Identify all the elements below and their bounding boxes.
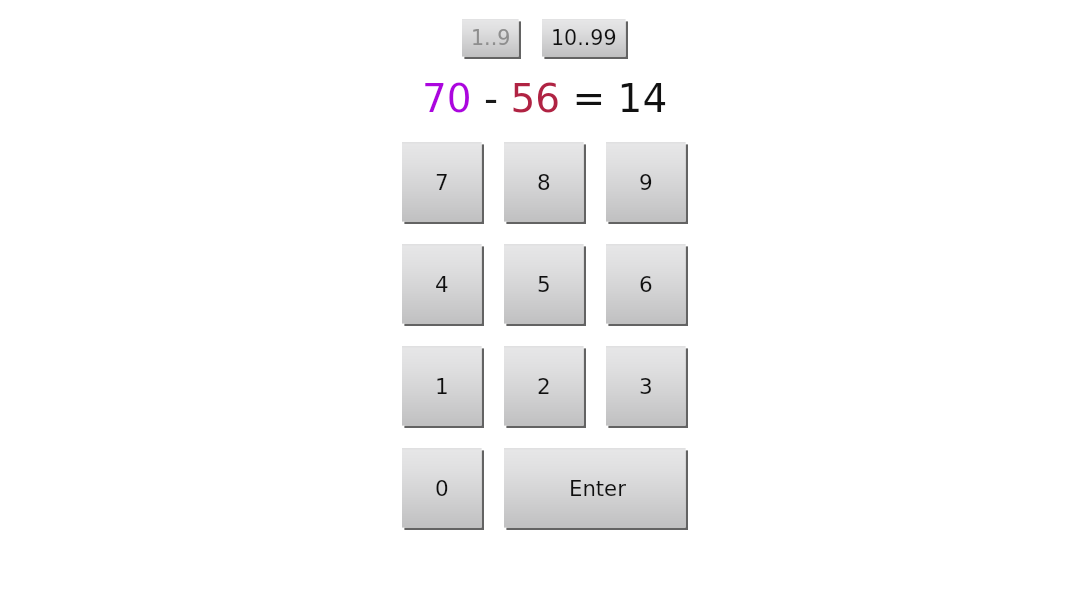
staticText: 9 — [639, 170, 653, 195]
staticText: 3 — [639, 374, 653, 399]
staticText: 7 — [435, 170, 449, 195]
button[interactable]: 2 — [504, 346, 586, 428]
button[interactable]: Enter — [504, 448, 688, 530]
staticText: 2 — [537, 374, 551, 399]
staticText: 6 — [639, 272, 653, 297]
staticText: Enter — [569, 476, 626, 501]
staticText: 5 — [537, 272, 551, 297]
button[interactable]: 8 — [504, 142, 586, 224]
button[interactable]: 9 — [606, 142, 688, 224]
button[interactable]: 4 — [402, 244, 484, 326]
button[interactable]: 1..9 — [462, 19, 521, 59]
button[interactable]: 6 — [606, 244, 688, 326]
button[interactable]: 1 — [402, 346, 484, 428]
button[interactable]: 10..99 — [542, 19, 628, 59]
staticText: 0 — [435, 476, 449, 501]
button[interactable]: 3 — [606, 346, 688, 428]
staticText: 70 - 56 = 14 — [422, 76, 668, 121]
button[interactable]: 0 — [402, 448, 484, 530]
staticText: 8 — [537, 170, 551, 195]
staticText: 4 — [435, 272, 449, 297]
button[interactable]: 7 — [402, 142, 484, 224]
staticText: 10..99 — [551, 26, 617, 50]
button[interactable]: 5 — [504, 244, 586, 326]
staticText: 1..9 — [471, 26, 511, 50]
staticText: 1 — [435, 374, 449, 399]
